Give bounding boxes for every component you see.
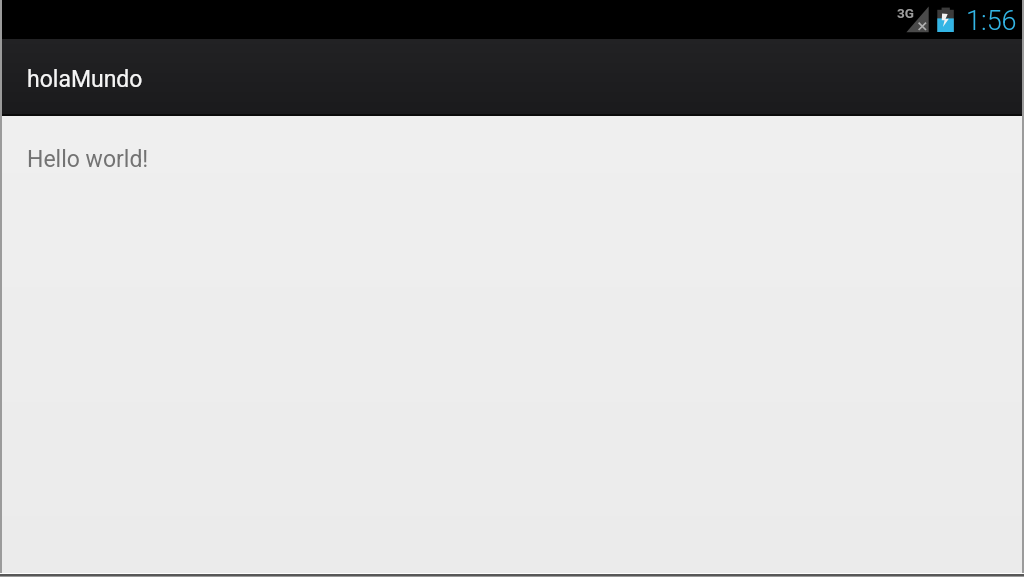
button[interactable]: holaMundo: [2, 39, 177, 116]
staticText: Hello world!: [27, 146, 149, 173]
staticText: holaMundo: [27, 66, 143, 93]
staticText: 1:56: [966, 5, 1017, 37]
button[interactable]: Mobile signal 3G: [896, 0, 932, 39]
staticText: 3G: [897, 5, 914, 21]
button[interactable]: Battery charging: [937, 0, 957, 39]
